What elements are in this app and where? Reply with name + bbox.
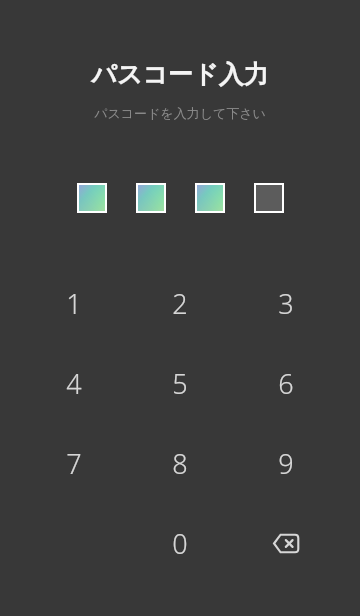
staticText: 2: [172, 285, 188, 322]
button[interactable]: 4: [21, 343, 127, 423]
staticText: 0: [172, 525, 188, 562]
button[interactable]: 2: [127, 263, 233, 343]
staticText: パスコード入力: [91, 59, 269, 90]
button[interactable]: Backspace: [233, 503, 339, 583]
staticText: 3: [278, 285, 294, 322]
button[interactable]: 3: [233, 263, 339, 343]
button[interactable]: 9: [233, 423, 339, 503]
staticText: パスコードを入力して下さい: [94, 105, 266, 121]
button[interactable]: 8: [127, 423, 233, 503]
button[interactable]: 0: [127, 503, 233, 583]
staticText: 7: [66, 445, 82, 482]
button[interactable]: 5: [127, 343, 233, 423]
button[interactable]: 1: [21, 263, 127, 343]
button[interactable]: 7: [21, 423, 127, 503]
staticText: 5: [172, 365, 188, 402]
staticText: 1: [66, 285, 82, 322]
button[interactable]: 6: [233, 343, 339, 423]
staticText: 8: [172, 445, 188, 482]
staticText: 9: [278, 445, 294, 482]
staticText: 4: [66, 365, 82, 402]
staticText: 6: [278, 365, 294, 402]
